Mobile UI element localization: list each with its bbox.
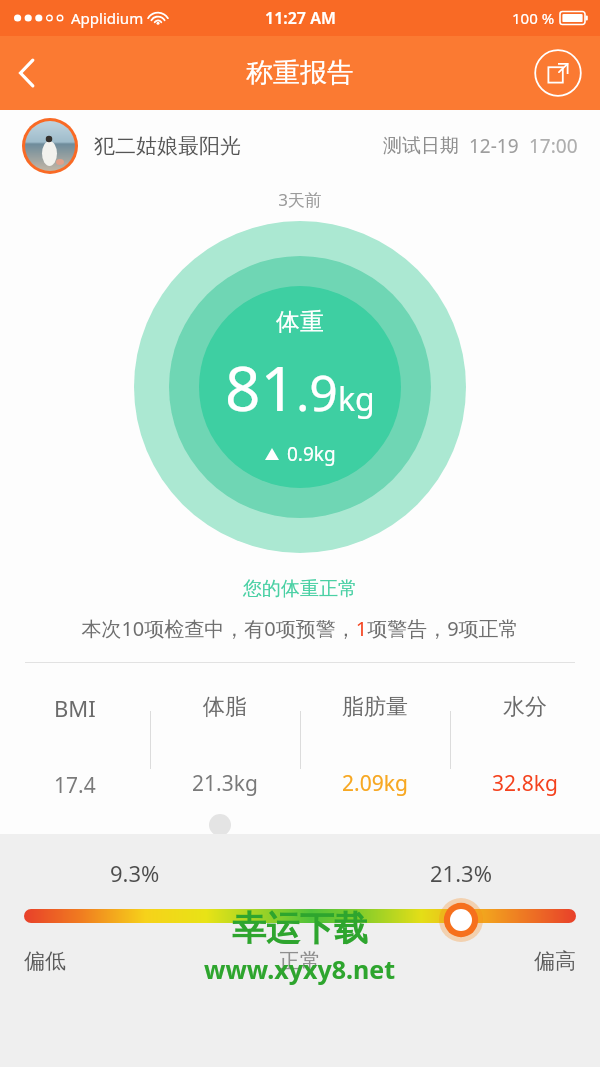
staticText: 体脂: [203, 693, 247, 721]
staticText: 正常: [279, 948, 321, 974]
staticText: 81.9kg: [225, 345, 375, 429]
staticText: 17:00: [529, 133, 578, 159]
staticText: 17.4: [54, 771, 96, 800]
staticText: 您的体重正常: [0, 577, 600, 601]
button[interactable]: [24, 909, 576, 923]
staticText: 32.8kg: [492, 769, 558, 798]
staticText: Applidium: [71, 8, 144, 28]
button[interactable]: 脂肪量: [300, 693, 450, 813]
staticText: BMI: [54, 693, 96, 723]
staticText: 体重: [276, 307, 324, 337]
staticText: 称重报告: [246, 56, 354, 90]
button[interactable]: 体脂: [150, 693, 300, 813]
other: Value handle: [439, 898, 483, 934]
staticText: 偏低: [24, 948, 66, 974]
staticText: 2.09kg: [342, 769, 408, 798]
button[interactable]: Back: [0, 45, 56, 101]
staticText: 幸运下载: [232, 907, 368, 950]
staticText: 偏高: [534, 948, 576, 974]
staticText: 100 %: [512, 8, 555, 28]
button[interactable]: 水分: [450, 693, 600, 813]
staticText: 本次10项检查中，有0项预警，1项警告，9项正常: [0, 615, 600, 642]
staticText: 21.3%: [430, 858, 492, 888]
staticText: 水分: [503, 693, 547, 721]
staticText: 测试日期: [383, 134, 459, 158]
staticText: 0.9kg: [287, 441, 336, 467]
staticText: 12-19: [469, 133, 519, 159]
staticText: 犯二姑娘最阳光: [94, 133, 241, 159]
button[interactable]: Share: [534, 49, 582, 97]
staticText: 11:27 AM: [265, 7, 336, 29]
staticText: 9.3%: [110, 858, 160, 888]
staticText: www.xyxy8.net: [204, 952, 396, 986]
staticText: 3天前: [0, 188, 600, 211]
staticText: 21.3kg: [192, 769, 258, 798]
staticText: 脂肪量: [342, 693, 408, 721]
button[interactable]: BMI: [0, 693, 150, 813]
